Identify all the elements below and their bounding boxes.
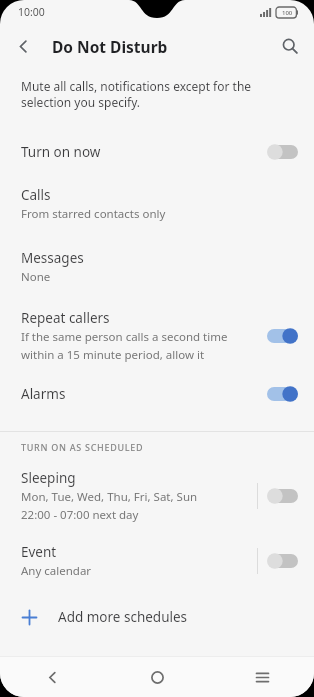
button[interactable]: Alarms on	[267, 386, 298, 402]
staticText: Sleeping	[21, 469, 76, 487]
button[interactable]: Alarms	[0, 375, 314, 413]
staticText: Turn on now	[21, 143, 101, 161]
staticText: 22:00 - 07:00 next day	[21, 507, 139, 523]
staticText: If the same person calls a second time	[21, 329, 228, 345]
staticText: Calls	[21, 186, 51, 204]
button[interactable]: Add more schedules	[0, 597, 314, 637]
button[interactable]: Sleeping	[0, 467, 314, 525]
button[interactable]: Calls	[0, 181, 314, 227]
staticText: Do Not Disturb	[52, 36, 168, 57]
staticText: Event	[21, 543, 57, 561]
button[interactable]: Back	[8, 31, 38, 61]
staticText: Any calendar	[21, 563, 92, 579]
button[interactable]: Event off	[267, 553, 298, 569]
button[interactable]: Event	[0, 539, 314, 583]
button[interactable]: Home	[140, 660, 174, 694]
button[interactable]: Back	[35, 660, 69, 694]
button[interactable]: Recent apps	[245, 660, 279, 694]
button[interactable]: Repeat callers	[0, 307, 314, 365]
button[interactable]: Turn on now	[0, 133, 314, 171]
button[interactable]: Turn on now off	[267, 144, 298, 160]
staticText: Mon, Tue, Wed, Thu, Fri, Sat, Sun	[21, 489, 198, 505]
staticText: TURN ON AS SCHEDULED	[21, 441, 144, 453]
button[interactable]: Search	[275, 31, 305, 61]
staticText: 100	[282, 9, 293, 17]
staticText: 10:00	[18, 5, 45, 19]
staticText: From starred contacts only	[21, 206, 166, 222]
staticText: Alarms	[21, 385, 66, 403]
staticText: Add more schedules	[58, 608, 188, 626]
staticText: Messages	[21, 249, 84, 267]
staticText: Mute all calls, notifications except for…	[21, 78, 288, 111]
button[interactable]: Sleeping off	[267, 488, 298, 504]
button[interactable]: Messages	[0, 244, 314, 290]
staticText: Repeat callers	[21, 309, 110, 327]
staticText: None	[21, 269, 51, 285]
staticText: within a 15 minute period, allow it	[21, 347, 205, 363]
button[interactable]: Repeat callers on	[267, 328, 298, 344]
